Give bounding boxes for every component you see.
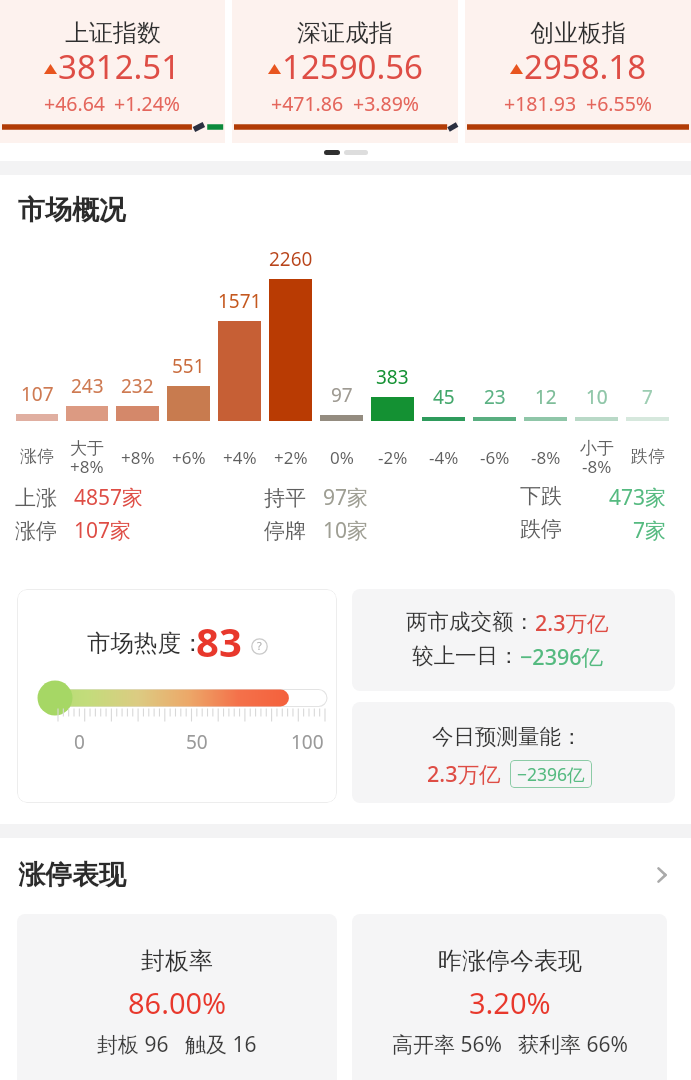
staticText: +4% — [223, 446, 257, 469]
staticText: 243 — [71, 373, 104, 399]
staticText: 97家 — [323, 483, 369, 512]
other: More — [651, 864, 673, 886]
staticText: 12590.56 — [282, 44, 423, 89]
staticText: +46.64 — [44, 90, 105, 117]
button[interactable]: 深证成指 — [232, 0, 458, 143]
staticText: 551 — [172, 353, 205, 379]
button[interactable]: 市场热度： — [17, 589, 337, 803]
staticText: 86.00% — [128, 983, 227, 1022]
staticText: +8% — [70, 455, 104, 478]
staticText: -8% — [531, 446, 561, 469]
staticText: 232 — [121, 373, 154, 399]
staticText: -2% — [378, 446, 408, 469]
staticText: 0 — [74, 729, 85, 755]
button[interactable]: 停牌 — [264, 516, 369, 545]
staticText: 封板 96 — [97, 1030, 169, 1059]
button[interactable]: 涨停表现 — [18, 858, 673, 892]
staticText: 小于 — [580, 438, 614, 459]
staticText: -4% — [429, 446, 459, 469]
button[interactable]: 涨停 — [15, 516, 132, 545]
staticText: 上涨 — [15, 485, 57, 511]
staticText: 107 — [21, 381, 54, 407]
staticText: 1571 — [218, 288, 262, 314]
staticText: 50 — [186, 729, 208, 755]
staticText: 97 — [331, 382, 353, 408]
button[interactable]: 创业板指 — [465, 0, 691, 143]
button[interactable]: 封板率 — [17, 914, 337, 1080]
staticText: 下跌 — [520, 483, 562, 509]
staticText: 473家 — [609, 483, 667, 512]
staticText: 创业板指 — [530, 18, 626, 48]
staticText: 跌停 — [631, 446, 665, 467]
button[interactable]: 上涨 — [15, 483, 144, 512]
button[interactable]: 下跌 — [520, 483, 667, 512]
staticText: 持平 — [264, 485, 306, 511]
staticText: +1.24% — [114, 90, 181, 117]
staticText: 83 — [196, 614, 242, 668]
staticText: 高开率 56% — [392, 1030, 502, 1059]
staticText: 12 — [535, 384, 557, 410]
staticText: 今日预测量能： — [432, 723, 583, 750]
staticText: -6% — [480, 446, 510, 469]
staticText: -8% — [582, 455, 612, 478]
staticText: 昨涨停今表现 — [438, 946, 582, 976]
button[interactable]: 跌停 — [520, 516, 667, 545]
staticText: 两市成交额： — [406, 608, 535, 635]
staticText: 涨停 — [15, 518, 57, 544]
staticText: 10 — [586, 384, 608, 410]
staticText: 市场热度： — [87, 628, 205, 658]
staticText: +2% — [274, 446, 308, 469]
staticText: 100 — [291, 729, 324, 755]
staticText: 107家 — [74, 516, 132, 545]
staticText: +181.93 — [504, 90, 577, 117]
staticText: −2396亿 — [517, 762, 585, 786]
staticText: 4857家 — [74, 483, 144, 512]
staticText: 涨停 — [20, 446, 54, 467]
staticText: 深证成指 — [297, 18, 393, 48]
staticText: 封板率 — [141, 946, 213, 976]
button[interactable]: 昨涨停今表现 — [352, 914, 667, 1080]
staticText: 3.20% — [469, 983, 551, 1022]
staticText: 2958.18 — [524, 44, 647, 89]
staticText: ? — [257, 638, 262, 653]
staticText: 较上一日： — [412, 642, 520, 669]
staticText: 7 — [642, 384, 653, 410]
staticText: 获利率 66% — [518, 1030, 628, 1059]
staticText: +6% — [172, 446, 206, 469]
staticText: 触及 16 — [185, 1030, 257, 1059]
staticText: 7家 — [633, 516, 667, 545]
staticText: 2.3万亿 — [427, 759, 501, 788]
staticText: 2.3万亿 — [535, 608, 609, 637]
staticText: 23 — [484, 384, 506, 410]
staticText: 3812.51 — [58, 44, 181, 89]
button[interactable]: 今日预测量能： — [352, 702, 675, 803]
staticText: 0% — [330, 446, 354, 469]
staticText: 涨停表现 — [18, 858, 126, 892]
staticText: 停牌 — [264, 518, 306, 544]
staticText: 市场概况 — [18, 193, 126, 227]
staticText: +8% — [121, 446, 155, 469]
button[interactable]: 持平 — [264, 483, 369, 512]
staticText: 大于 — [70, 438, 104, 459]
staticText: +3.89% — [353, 90, 420, 117]
staticText: +471.86 — [271, 90, 344, 117]
staticText: 10家 — [323, 516, 369, 545]
button[interactable]: 上证指数 — [0, 0, 225, 143]
staticText: −2396亿 — [520, 642, 604, 671]
staticText: 45 — [433, 384, 455, 410]
staticText: 2260 — [269, 246, 313, 272]
button[interactable]: 两市成交额： — [352, 589, 675, 691]
staticText: 跌停 — [520, 516, 562, 542]
staticText: 383 — [376, 364, 409, 390]
staticText: 上证指数 — [65, 18, 161, 48]
button[interactable]: Help — [251, 638, 268, 655]
staticText: +6.55% — [586, 90, 653, 117]
